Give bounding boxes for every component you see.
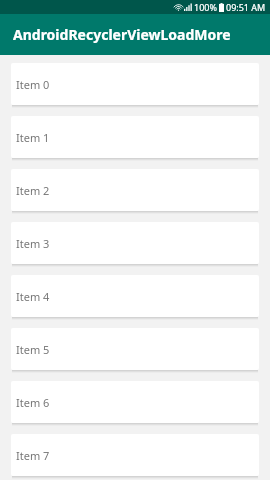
staticText: Item 1: [16, 130, 50, 145]
staticText: Item 5: [16, 342, 50, 357]
staticText: Item 3: [16, 236, 50, 251]
button[interactable]: Item 5: [11, 328, 259, 370]
staticText: Item 7: [16, 448, 50, 463]
staticText: Item 4: [16, 289, 50, 304]
button[interactable]: Item 2: [11, 169, 259, 211]
staticText: Item 0: [16, 77, 50, 92]
staticText: 09:51 AM: [226, 1, 266, 13]
staticText: AndroidRecyclerViewLoadMore: [13, 25, 231, 44]
button[interactable]: Item 7: [11, 434, 259, 476]
button[interactable]: Item 1: [11, 116, 259, 158]
button[interactable]: Item 3: [11, 222, 259, 264]
button[interactable]: Item 6: [11, 381, 259, 423]
staticText: Item 2: [16, 183, 50, 198]
staticText: 100%: [194, 1, 217, 13]
staticText: Item 6: [16, 395, 50, 410]
button[interactable]: Item 0: [11, 63, 259, 105]
button[interactable]: Item 4: [11, 275, 259, 317]
